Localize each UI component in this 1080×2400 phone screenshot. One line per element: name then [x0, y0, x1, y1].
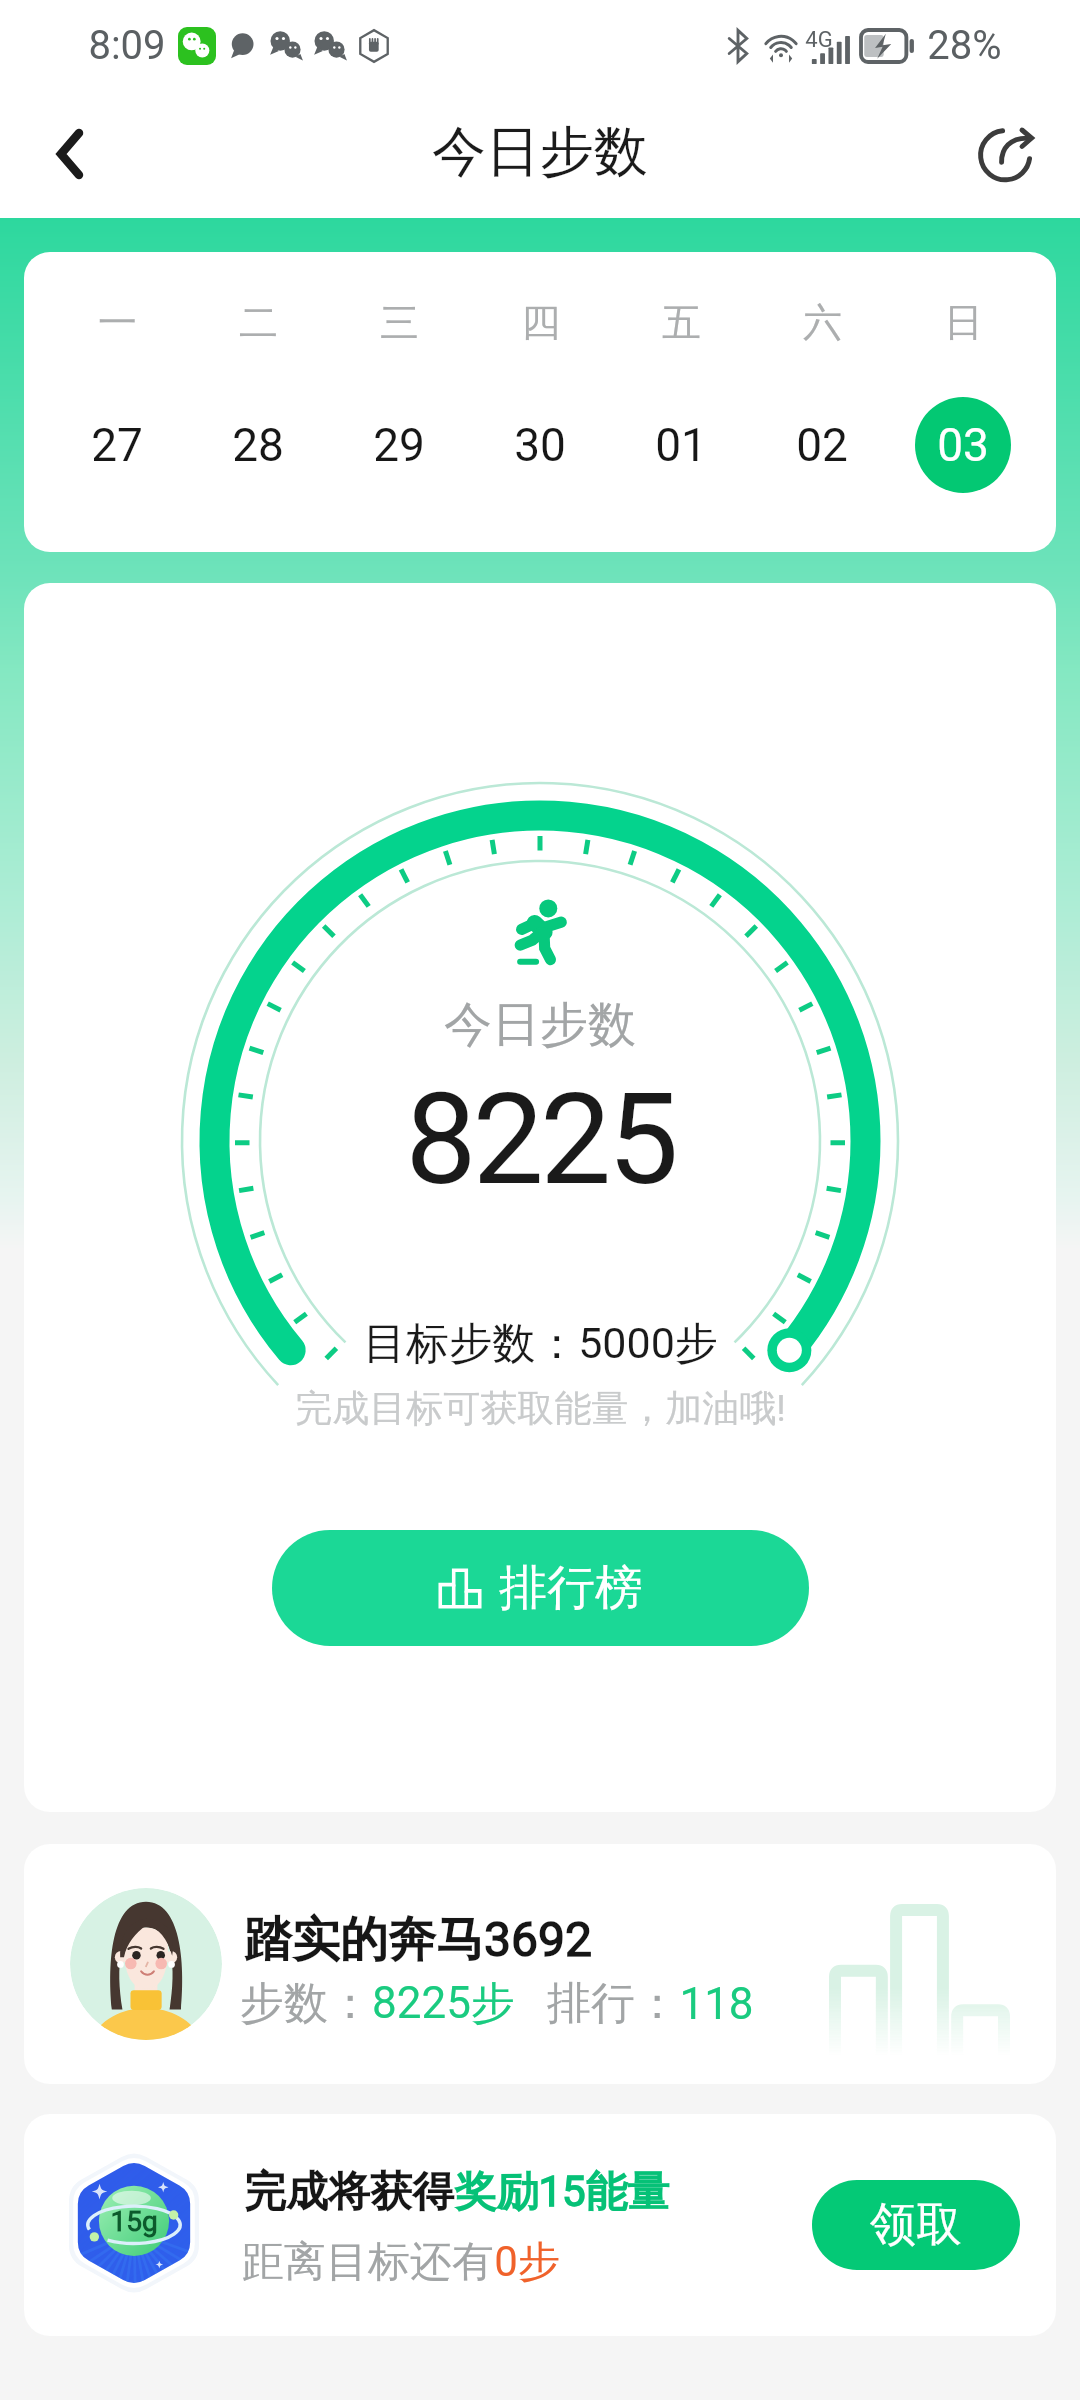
staticText: 今日步数 — [444, 995, 636, 1055]
staticText: 03 — [937, 418, 989, 472]
staticText: 踏实的奔马3692 — [244, 1910, 592, 1970]
staticText: 领取 — [870, 2196, 962, 2254]
staticText: 8225 — [405, 1065, 675, 1214]
staticText: 排行榜 — [499, 1558, 643, 1618]
button[interactable]: 一 — [47, 278, 187, 468]
staticText: 0步 — [494, 2236, 560, 2289]
staticText: 步数： — [240, 1976, 372, 2031]
staticText: 日 — [944, 298, 983, 347]
button[interactable]: 六 — [752, 278, 892, 468]
staticText: 02 — [796, 418, 848, 472]
staticText: 六 — [803, 298, 842, 347]
button[interactable]: Share — [957, 104, 1057, 204]
staticText: 28 — [232, 418, 284, 472]
staticText: 四 — [521, 298, 560, 347]
staticText: 距离目标还有 — [242, 2236, 494, 2289]
staticText: 01 — [655, 418, 707, 472]
button[interactable]: 四 — [470, 278, 610, 468]
staticText: 三 — [380, 298, 419, 347]
staticText: 8225步 — [372, 1976, 515, 2031]
button[interactable]: 领取 — [812, 2180, 1020, 2270]
staticText: 118 — [679, 1978, 754, 2030]
staticText: 29 — [373, 418, 425, 472]
staticText: 完成将获得 — [244, 2166, 454, 2219]
staticText: 8:09 — [88, 22, 166, 69]
staticText: 完成目标可获取能量，加油哦! — [295, 1385, 786, 1432]
staticText: 五 — [662, 298, 701, 347]
staticText: 今日步数 — [432, 118, 648, 186]
staticText: 4G — [805, 27, 833, 53]
staticText: 27 — [91, 418, 143, 472]
staticText: 奖励15能量 — [454, 2166, 670, 2219]
button[interactable]: 日 — [893, 278, 1033, 468]
staticText: 30 — [514, 418, 566, 472]
staticText: 15g — [110, 2205, 158, 2238]
staticText: 28% — [927, 22, 1002, 69]
staticText: 一 — [98, 298, 137, 347]
button[interactable]: Back — [20, 104, 120, 204]
button[interactable]: 踏实的奔马3692 — [24, 1844, 1056, 2084]
button[interactable]: 三 — [329, 278, 469, 468]
button[interactable]: 二 — [188, 278, 328, 468]
staticText: 排行： — [547, 1976, 679, 2031]
staticText: 二 — [239, 298, 278, 347]
button[interactable]: 排行榜 — [272, 1530, 809, 1646]
button[interactable]: 五 — [611, 278, 751, 468]
staticText: 目标步数：5000步 — [363, 1317, 718, 1371]
